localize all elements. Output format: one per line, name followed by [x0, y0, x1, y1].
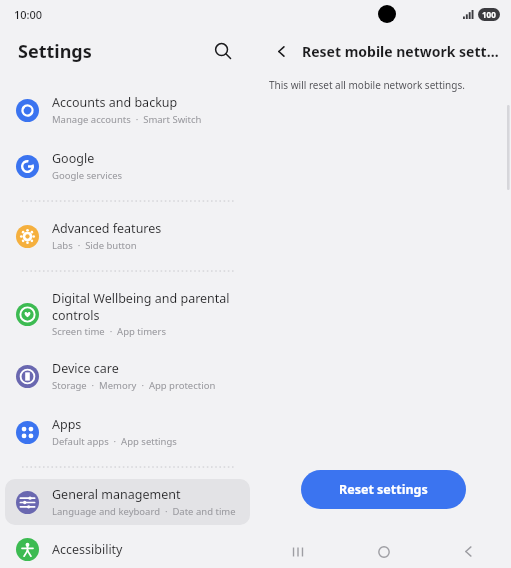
staticText: Settings	[18, 39, 92, 64]
button[interactable]: Device care	[5, 353, 250, 399]
button[interactable]: Google	[5, 143, 250, 189]
button[interactable]: Back	[426, 535, 511, 568]
staticText: Google services	[52, 169, 123, 182]
staticText: Reset settings	[339, 481, 428, 498]
button[interactable]: Home	[341, 535, 426, 568]
staticText: Labs · Side button	[52, 239, 137, 252]
button[interactable]: Apps	[5, 409, 250, 455]
staticText: Manage accounts · Smart Switch	[52, 113, 202, 126]
staticText: Digital Wellbeing and parental controls	[52, 290, 242, 323]
button[interactable]: Back	[267, 37, 295, 65]
button[interactable]: Advanced features	[5, 213, 250, 259]
staticText: 100	[482, 9, 496, 20]
staticText: Screen time · App timers	[52, 325, 166, 338]
staticText: Google	[52, 150, 95, 167]
staticText: Language and keyboard · Date and time	[52, 505, 236, 518]
staticText: Default apps · App settings	[52, 435, 177, 448]
button[interactable]: Reset settings	[301, 470, 466, 509]
button[interactable]: Accounts and backup	[5, 87, 250, 133]
button[interactable]: General management	[5, 479, 250, 525]
staticText: Reset mobile network setti...	[302, 42, 501, 61]
staticText: This will reset all mobile network setti…	[269, 78, 465, 92]
staticText: Device care	[52, 360, 119, 377]
staticText: 10:00	[14, 7, 43, 22]
staticText: Accessibility	[52, 541, 123, 558]
staticText: Accounts and backup	[52, 94, 178, 111]
button[interactable]: Accessibility	[5, 531, 250, 568]
staticText: General management	[52, 486, 181, 503]
staticText: Advanced features	[52, 220, 162, 237]
button[interactable]: Digital Wellbeing and parental controls	[5, 283, 250, 345]
button[interactable]: Recents	[255, 535, 341, 568]
button[interactable]: Search	[207, 35, 239, 67]
staticText: Storage · Memory · App protection	[52, 379, 216, 392]
staticText: Apps	[52, 416, 82, 433]
